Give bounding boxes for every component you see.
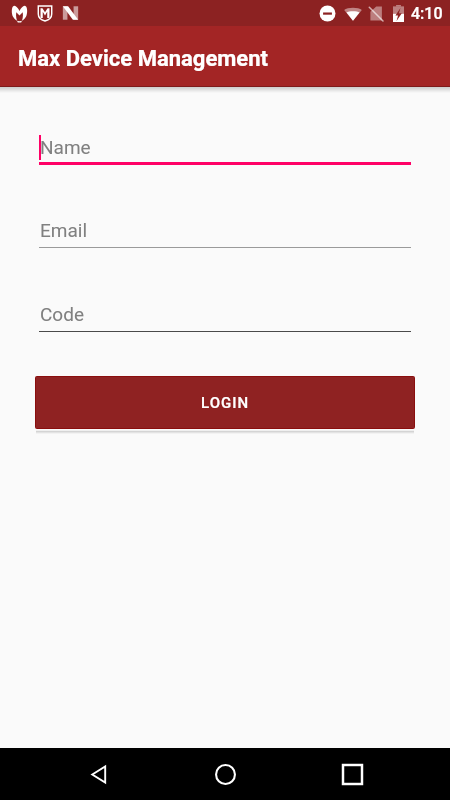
- button[interactable]: Code: [39, 302, 411, 332]
- button[interactable]: Email: [39, 218, 411, 248]
- staticText: LOGIN: [201, 394, 250, 412]
- button[interactable]: Name: [39, 135, 411, 165]
- button[interactable]: LOGIN: [35, 376, 415, 429]
- staticText: Max Device Management: [18, 46, 268, 72]
- button[interactable]: Home: [202, 751, 248, 797]
- button[interactable]: Back: [76, 751, 122, 797]
- staticText: 4:10: [411, 4, 443, 23]
- staticText: Email: [40, 219, 88, 241]
- staticText: Name: [40, 136, 91, 158]
- staticText: Code: [40, 303, 84, 325]
- button[interactable]: Recent apps: [329, 751, 375, 797]
